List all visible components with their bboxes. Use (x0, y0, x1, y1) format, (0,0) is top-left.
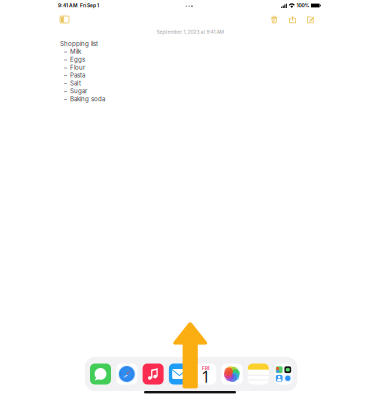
staticText: – (64, 72, 67, 79)
staticText: – (64, 48, 67, 55)
staticText: Baking soda (70, 95, 105, 103)
staticText: 9:41 AM Fri Sep 1 (58, 2, 99, 8)
button[interactable]: Show Sidebar (57, 13, 72, 26)
staticText: – (64, 56, 67, 63)
staticText: Sugar (70, 87, 87, 95)
button[interactable]: Notes (248, 363, 269, 384)
button[interactable]: Photos (221, 363, 242, 384)
button[interactable]: Calendar (195, 363, 216, 384)
staticText: – (64, 64, 67, 71)
button[interactable]: Delete (268, 13, 280, 26)
button[interactable]: New Note (304, 13, 318, 26)
button[interactable]: Mail (169, 363, 190, 384)
staticText: Pasta (70, 72, 85, 79)
button[interactable]: Multitasking Controls (183, 3, 195, 9)
staticText: 1 (201, 366, 210, 387)
staticText: Eggs (70, 56, 85, 63)
button[interactable]: Messages (90, 363, 111, 384)
staticText: Salt (70, 79, 81, 87)
staticText: 100% (296, 2, 309, 8)
staticText: Flour (70, 64, 85, 71)
staticText: – (64, 87, 67, 95)
staticText: Shopping list (60, 40, 98, 47)
button[interactable]: Safari (116, 363, 137, 384)
staticText: FRI (202, 365, 210, 372)
staticText: September 1, 2023 at 9:41 AM (156, 29, 223, 35)
staticText: – (64, 79, 67, 87)
staticText: – (64, 95, 67, 103)
button[interactable]: App Library (275, 363, 292, 384)
button[interactable]: Music (143, 363, 164, 384)
button[interactable]: Share (286, 13, 299, 26)
staticText: Milk (70, 48, 81, 55)
